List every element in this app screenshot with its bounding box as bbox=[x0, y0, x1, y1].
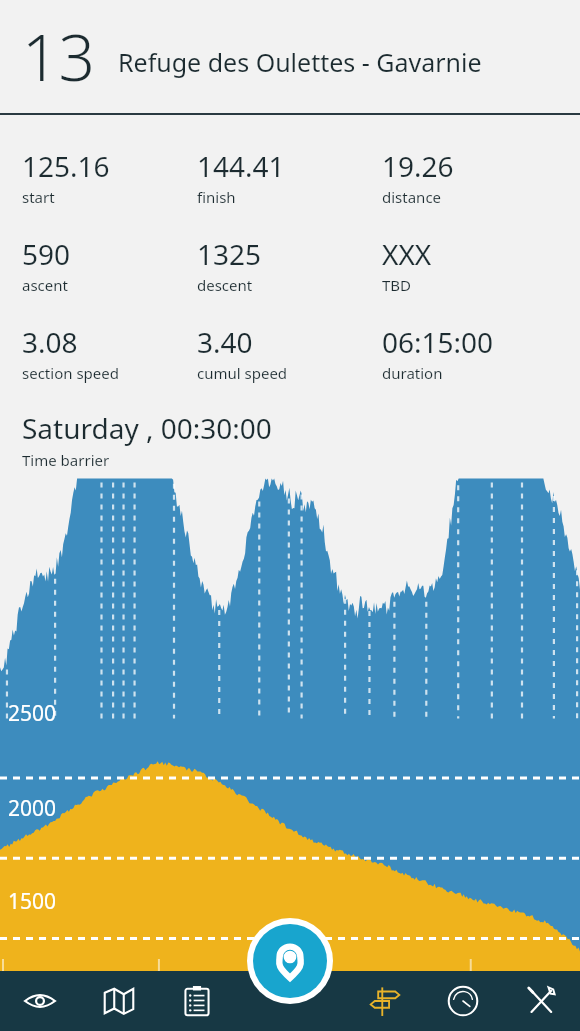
button[interactable]: Tools bbox=[502, 971, 580, 1031]
staticText: Refuge des Oulettes - Gavarnie bbox=[118, 45, 482, 79]
staticText: 3.40 bbox=[197, 323, 253, 361]
staticText: 144.41 bbox=[197, 147, 285, 185]
staticText: duration bbox=[382, 363, 443, 383]
button[interactable]: Waypoints bbox=[346, 971, 424, 1031]
staticText: distance bbox=[382, 187, 442, 207]
staticText: Saturday , 00:30:00 bbox=[22, 409, 272, 447]
staticText: XXX bbox=[382, 235, 432, 273]
staticText: cumul speed bbox=[197, 363, 288, 383]
staticText: 2000 bbox=[8, 794, 57, 823]
button[interactable]: Notes bbox=[158, 971, 236, 1031]
staticText: 13 bbox=[22, 13, 96, 100]
button[interactable]: Current location bbox=[247, 918, 333, 1004]
staticText: start bbox=[22, 187, 55, 207]
staticText: 2500 bbox=[8, 699, 57, 728]
staticText: 1325 bbox=[197, 235, 262, 273]
staticText: ascent bbox=[22, 275, 68, 295]
staticText: 1500 bbox=[8, 887, 57, 916]
button[interactable]: Overview bbox=[0, 971, 79, 1031]
staticText: descent bbox=[197, 275, 253, 295]
staticText: 125.16 bbox=[22, 147, 110, 185]
staticText: finish bbox=[197, 187, 236, 207]
staticText: section speed bbox=[22, 363, 119, 383]
staticText: 06:15:00 bbox=[382, 323, 494, 361]
button[interactable]: Map bbox=[79, 971, 158, 1031]
staticText: 590 bbox=[22, 235, 71, 273]
staticText: 19.26 bbox=[382, 147, 454, 185]
staticText: 3.08 bbox=[22, 323, 78, 361]
staticText: TBD bbox=[382, 275, 412, 295]
button[interactable]: 13 bbox=[0, 0, 580, 113]
button[interactable]: Speed bbox=[424, 971, 502, 1031]
staticText: Time barrier bbox=[22, 450, 110, 470]
